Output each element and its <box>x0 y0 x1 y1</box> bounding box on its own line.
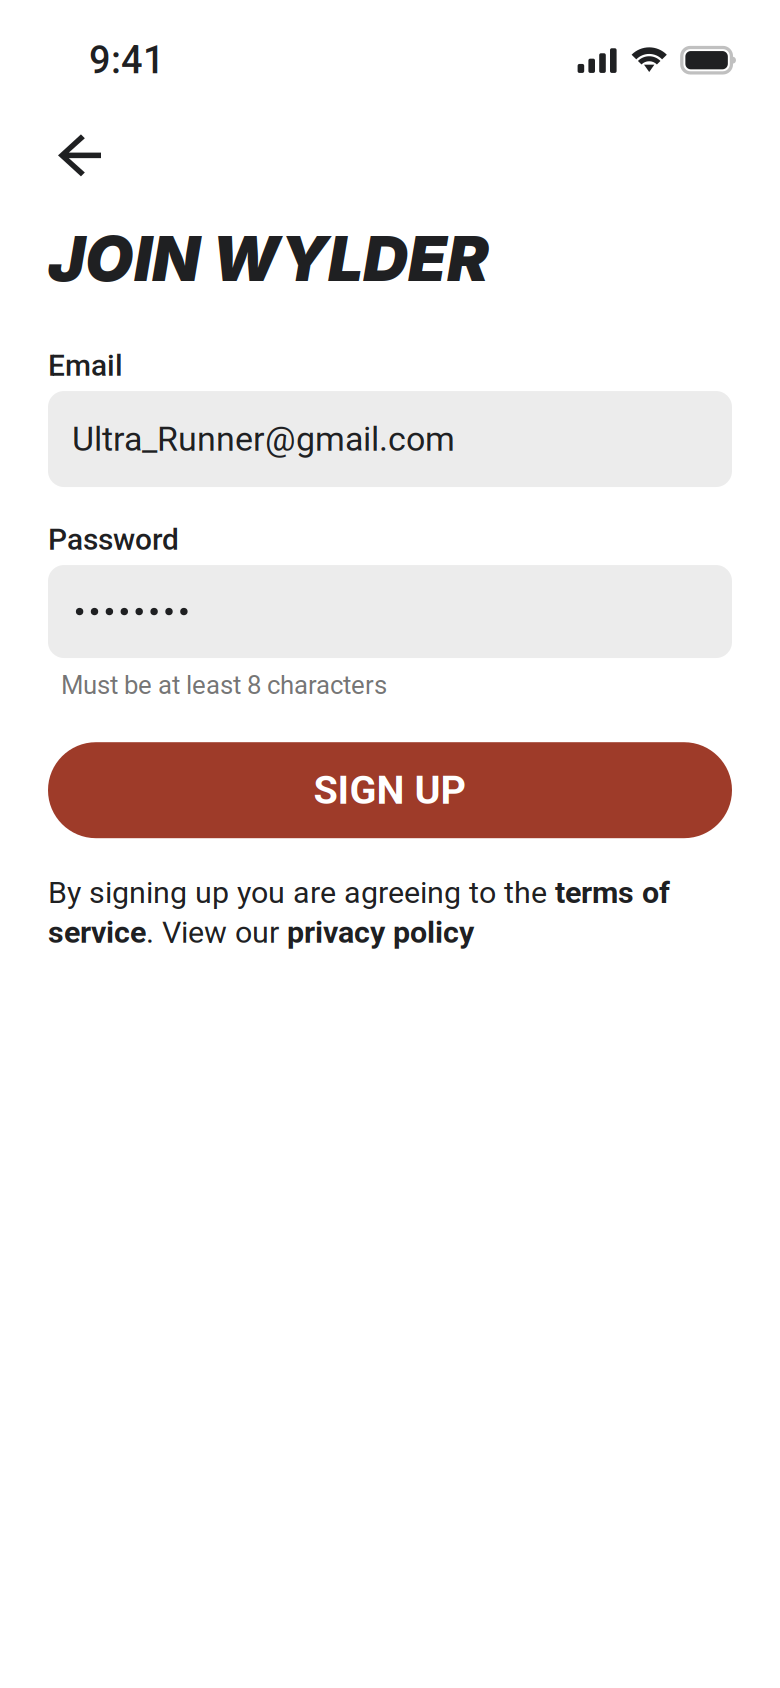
button[interactable]: Back <box>0 120 131 190</box>
staticText: By signing up you are agreeing to the te… <box>48 875 670 950</box>
staticText: SIGN UP <box>313 767 466 813</box>
staticText: Password <box>48 522 179 557</box>
staticText: Ultra_Runner@gmail.com <box>72 419 455 459</box>
staticText: Must be at least 8 characters <box>61 670 387 700</box>
staticText: JOIN WYLDER <box>48 220 489 296</box>
staticText: Email <box>48 348 123 383</box>
staticText: 9:41 <box>89 38 165 82</box>
button[interactable]: SIGN UP <box>0 742 732 838</box>
